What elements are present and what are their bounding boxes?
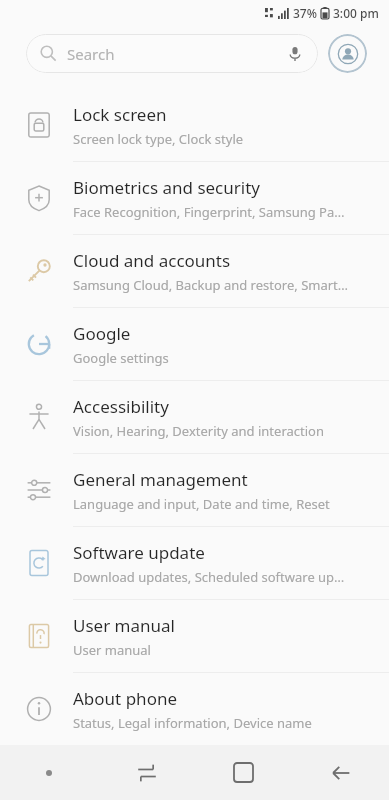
- button[interactable]: Accessibility: [0, 381, 389, 453]
- button[interactable]: Google: [0, 308, 389, 380]
- staticText: Search: [67, 44, 115, 64]
- button[interactable]: Back: [292, 745, 389, 800]
- button[interactable]: Keyboard toggle: [0, 745, 98, 800]
- staticText: Google: [73, 322, 131, 345]
- button[interactable]: Voice search: [284, 43, 306, 65]
- staticText: Download updates, Scheduled software up…: [73, 568, 345, 586]
- button[interactable]: Home: [195, 745, 292, 800]
- button[interactable]: Recent apps: [98, 745, 195, 800]
- staticText: Language and input, Date and time, Reset: [73, 495, 330, 513]
- staticText: Status, Legal information, Device name: [73, 714, 312, 732]
- button[interactable]: Software update: [0, 527, 389, 599]
- button[interactable]: Lock screen: [0, 89, 389, 161]
- staticText: Face Recognition, Fingerprint, Samsung P…: [73, 203, 345, 221]
- button[interactable]: Cloud and accounts: [0, 235, 389, 307]
- staticText: Lock screen: [73, 103, 167, 126]
- button[interactable]: About phone: [0, 673, 389, 745]
- staticText: General management: [73, 468, 248, 491]
- staticText: Samsung Cloud, Backup and restore, Smart…: [73, 276, 349, 294]
- staticText: Google settings: [73, 349, 169, 367]
- staticText: Cloud and accounts: [73, 249, 231, 272]
- button[interactable]: Account: [328, 34, 367, 73]
- staticText: User manual: [73, 641, 151, 659]
- staticText: About phone: [73, 687, 178, 710]
- staticText: 37%: [293, 5, 317, 21]
- staticText: 3:00 pm: [333, 5, 379, 21]
- staticText: Vision, Hearing, Dexterity and interacti…: [73, 422, 324, 440]
- button[interactable]: User manual: [0, 600, 389, 672]
- staticText: Biometrics and security: [73, 176, 260, 199]
- button[interactable]: Biometrics and security: [0, 162, 389, 234]
- button[interactable]: General management: [0, 454, 389, 526]
- staticText: Screen lock type, Clock style: [73, 130, 244, 148]
- staticText: Accessibility: [73, 395, 169, 418]
- staticText: User manual: [73, 614, 175, 637]
- staticText: Software update: [73, 541, 205, 564]
- button[interactable]: Search: [26, 34, 318, 73]
